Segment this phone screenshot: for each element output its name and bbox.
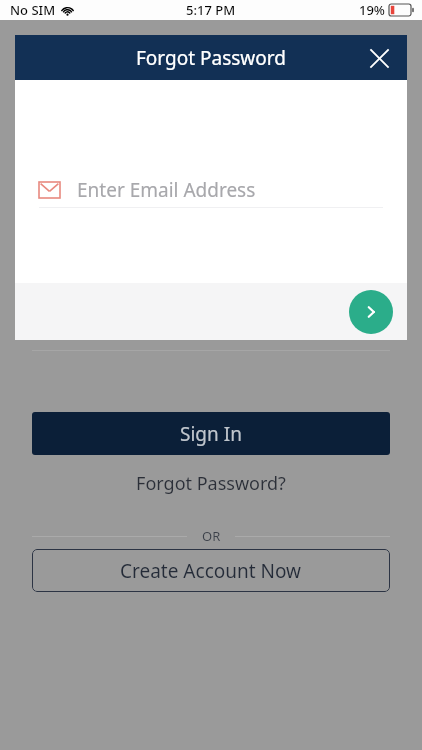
- staticText: OR: [202, 527, 221, 545]
- staticText: Create Account Now: [120, 558, 302, 584]
- staticText: No SIM: [10, 1, 56, 19]
- button[interactable]: Close: [359, 38, 399, 78]
- staticText: Forgot Password?: [136, 471, 286, 496]
- button[interactable]: Enter Email Address: [39, 173, 383, 207]
- staticText: Forgot Password: [136, 45, 286, 71]
- button[interactable]: Sign In: [32, 412, 390, 455]
- button[interactable]: Submit: [349, 290, 393, 334]
- button[interactable]: Forgot Password?: [32, 467, 390, 499]
- staticText: Enter Email Address: [77, 177, 256, 203]
- staticText: 5:17 PM: [186, 1, 236, 19]
- staticText: Sign In: [180, 421, 242, 447]
- staticText: 19%: [359, 1, 385, 19]
- button[interactable]: Create Account Now: [32, 549, 390, 592]
